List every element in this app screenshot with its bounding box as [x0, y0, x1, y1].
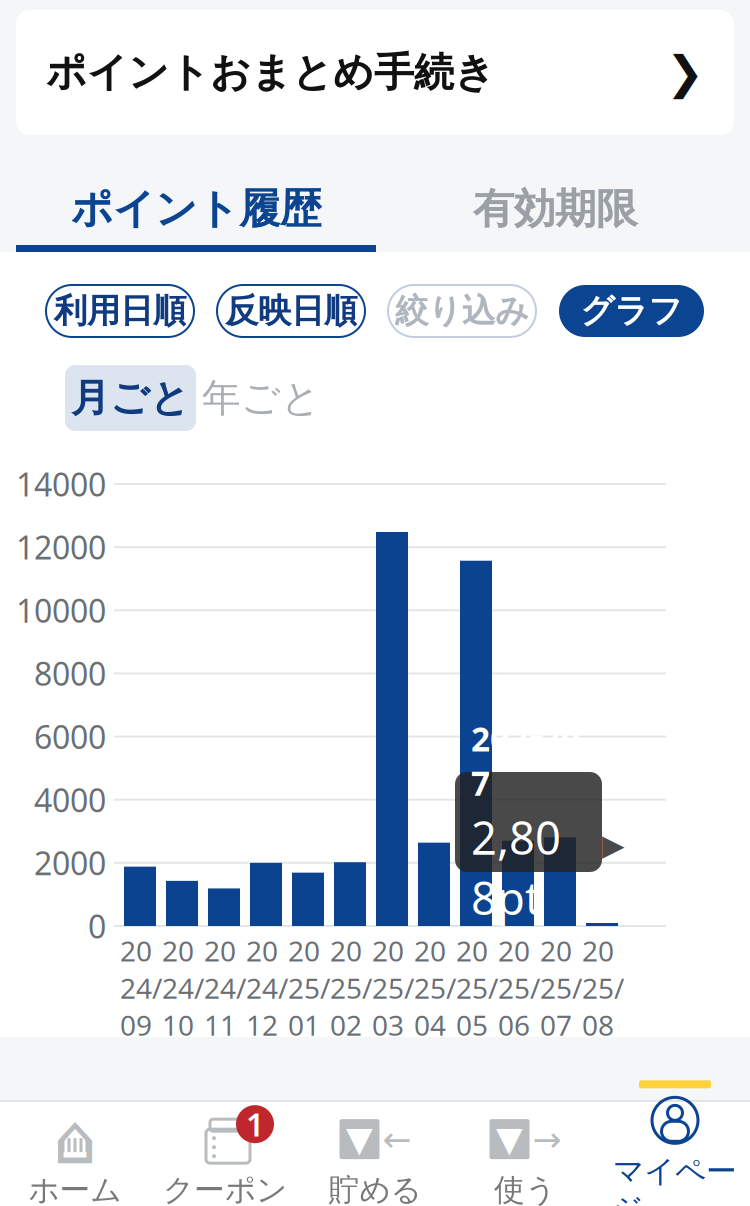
staticText: 12000 [16, 526, 106, 568]
button[interactable]: ポイント履歴 [16, 173, 376, 245]
staticText: 2025/08 [582, 932, 624, 1043]
button[interactable]: マイページ [600, 1102, 750, 1206]
staticText: 2025/04 [414, 932, 456, 1043]
button[interactable]: グラフ [559, 285, 704, 337]
staticText: 2025/07 [540, 932, 582, 1043]
button[interactable]: 利用日順 [46, 285, 194, 337]
staticText: 反映日順 [225, 290, 357, 331]
staticText: 2025/06 [498, 932, 540, 1043]
staticText: 6000 [34, 715, 106, 758]
button[interactable]: ポイントおまとめ手続き [16, 10, 734, 135]
staticText: ▼ [496, 1119, 523, 1159]
staticText: 絞り込み [395, 290, 529, 331]
staticText: 月ごと [71, 374, 190, 422]
staticText: ❯ [666, 47, 704, 98]
staticText: マイページ [613, 1152, 737, 1206]
button[interactable]: 有効期限 [376, 173, 734, 245]
staticText: ▶ [602, 828, 625, 862]
staticText: ⌂ [53, 1100, 97, 1178]
staticText: 10000 [16, 589, 106, 631]
staticText: 4000 [34, 778, 106, 821]
button[interactable]: クーポン [150, 1102, 300, 1206]
button[interactable]: 貯める [300, 1102, 450, 1206]
staticText: 2,808pt [471, 807, 561, 927]
staticText: 2025/01 [288, 932, 330, 1043]
staticText: ホーム [28, 1171, 121, 1206]
staticText: ▼ [346, 1119, 373, 1159]
staticText: ポイントおまとめ手続き [46, 48, 495, 97]
staticText: 14000 [16, 463, 106, 505]
staticText: 0 [88, 905, 106, 947]
staticText: 使う [494, 1171, 556, 1206]
staticText: → [532, 1119, 561, 1159]
button[interactable]: 絞り込み [388, 285, 536, 337]
staticText: 2024/09 [120, 932, 162, 1043]
staticText: 2025/05 [456, 932, 498, 1043]
staticText: グラフ [580, 290, 682, 331]
staticText: 2025/07 [471, 716, 580, 805]
button[interactable]: 反映日順 [217, 285, 365, 337]
staticText: 有効期限 [473, 184, 637, 234]
staticText: クーポン [163, 1171, 287, 1206]
button[interactable]: 年ごと [196, 365, 327, 431]
staticText: 2000 [34, 842, 106, 884]
staticText: 8000 [34, 652, 106, 695]
staticText: 1 [246, 1103, 264, 1145]
staticText: ポイント履歴 [71, 184, 321, 234]
staticText: 貯める [328, 1171, 421, 1206]
staticText: 利用日順 [54, 290, 186, 331]
button[interactable]: 使う [450, 1102, 600, 1206]
staticText: 2025/02 [330, 932, 372, 1043]
button[interactable]: 月ごと [65, 365, 196, 431]
button[interactable]: ホーム [0, 1102, 150, 1206]
staticText: 2025/03 [372, 932, 414, 1043]
staticText: 2024/12 [246, 932, 288, 1043]
staticText: ← [382, 1119, 411, 1159]
staticText: 2024/10 [162, 932, 204, 1043]
staticText: 2024/11 [204, 932, 246, 1043]
staticText: 年ごと [202, 374, 321, 422]
